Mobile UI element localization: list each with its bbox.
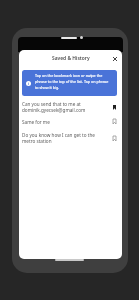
button[interactable]: Can you send that to me at dominik.gyecs… — [19, 99, 122, 115]
staticText: Tap on the bookmark icon or swipe the ph… — [35, 73, 117, 90]
button[interactable]: Bookmark — [110, 134, 119, 143]
staticText: Same for me — [22, 119, 110, 125]
button[interactable]: Do you know how I can get to the metro s… — [19, 130, 122, 146]
button[interactable]: Close — [110, 54, 119, 63]
staticText: Do you know how I can get to the metro s… — [22, 132, 110, 144]
button[interactable]: i — [22, 70, 117, 96]
staticText: Can you send that to me at dominik.gyecs… — [22, 101, 110, 113]
staticText: i — [28, 81, 30, 86]
button[interactable]: Bookmark — [110, 117, 119, 126]
staticText: Saved & History — [52, 55, 90, 62]
button[interactable]: Bookmark — [110, 103, 119, 112]
button[interactable]: Same for me — [19, 115, 122, 128]
